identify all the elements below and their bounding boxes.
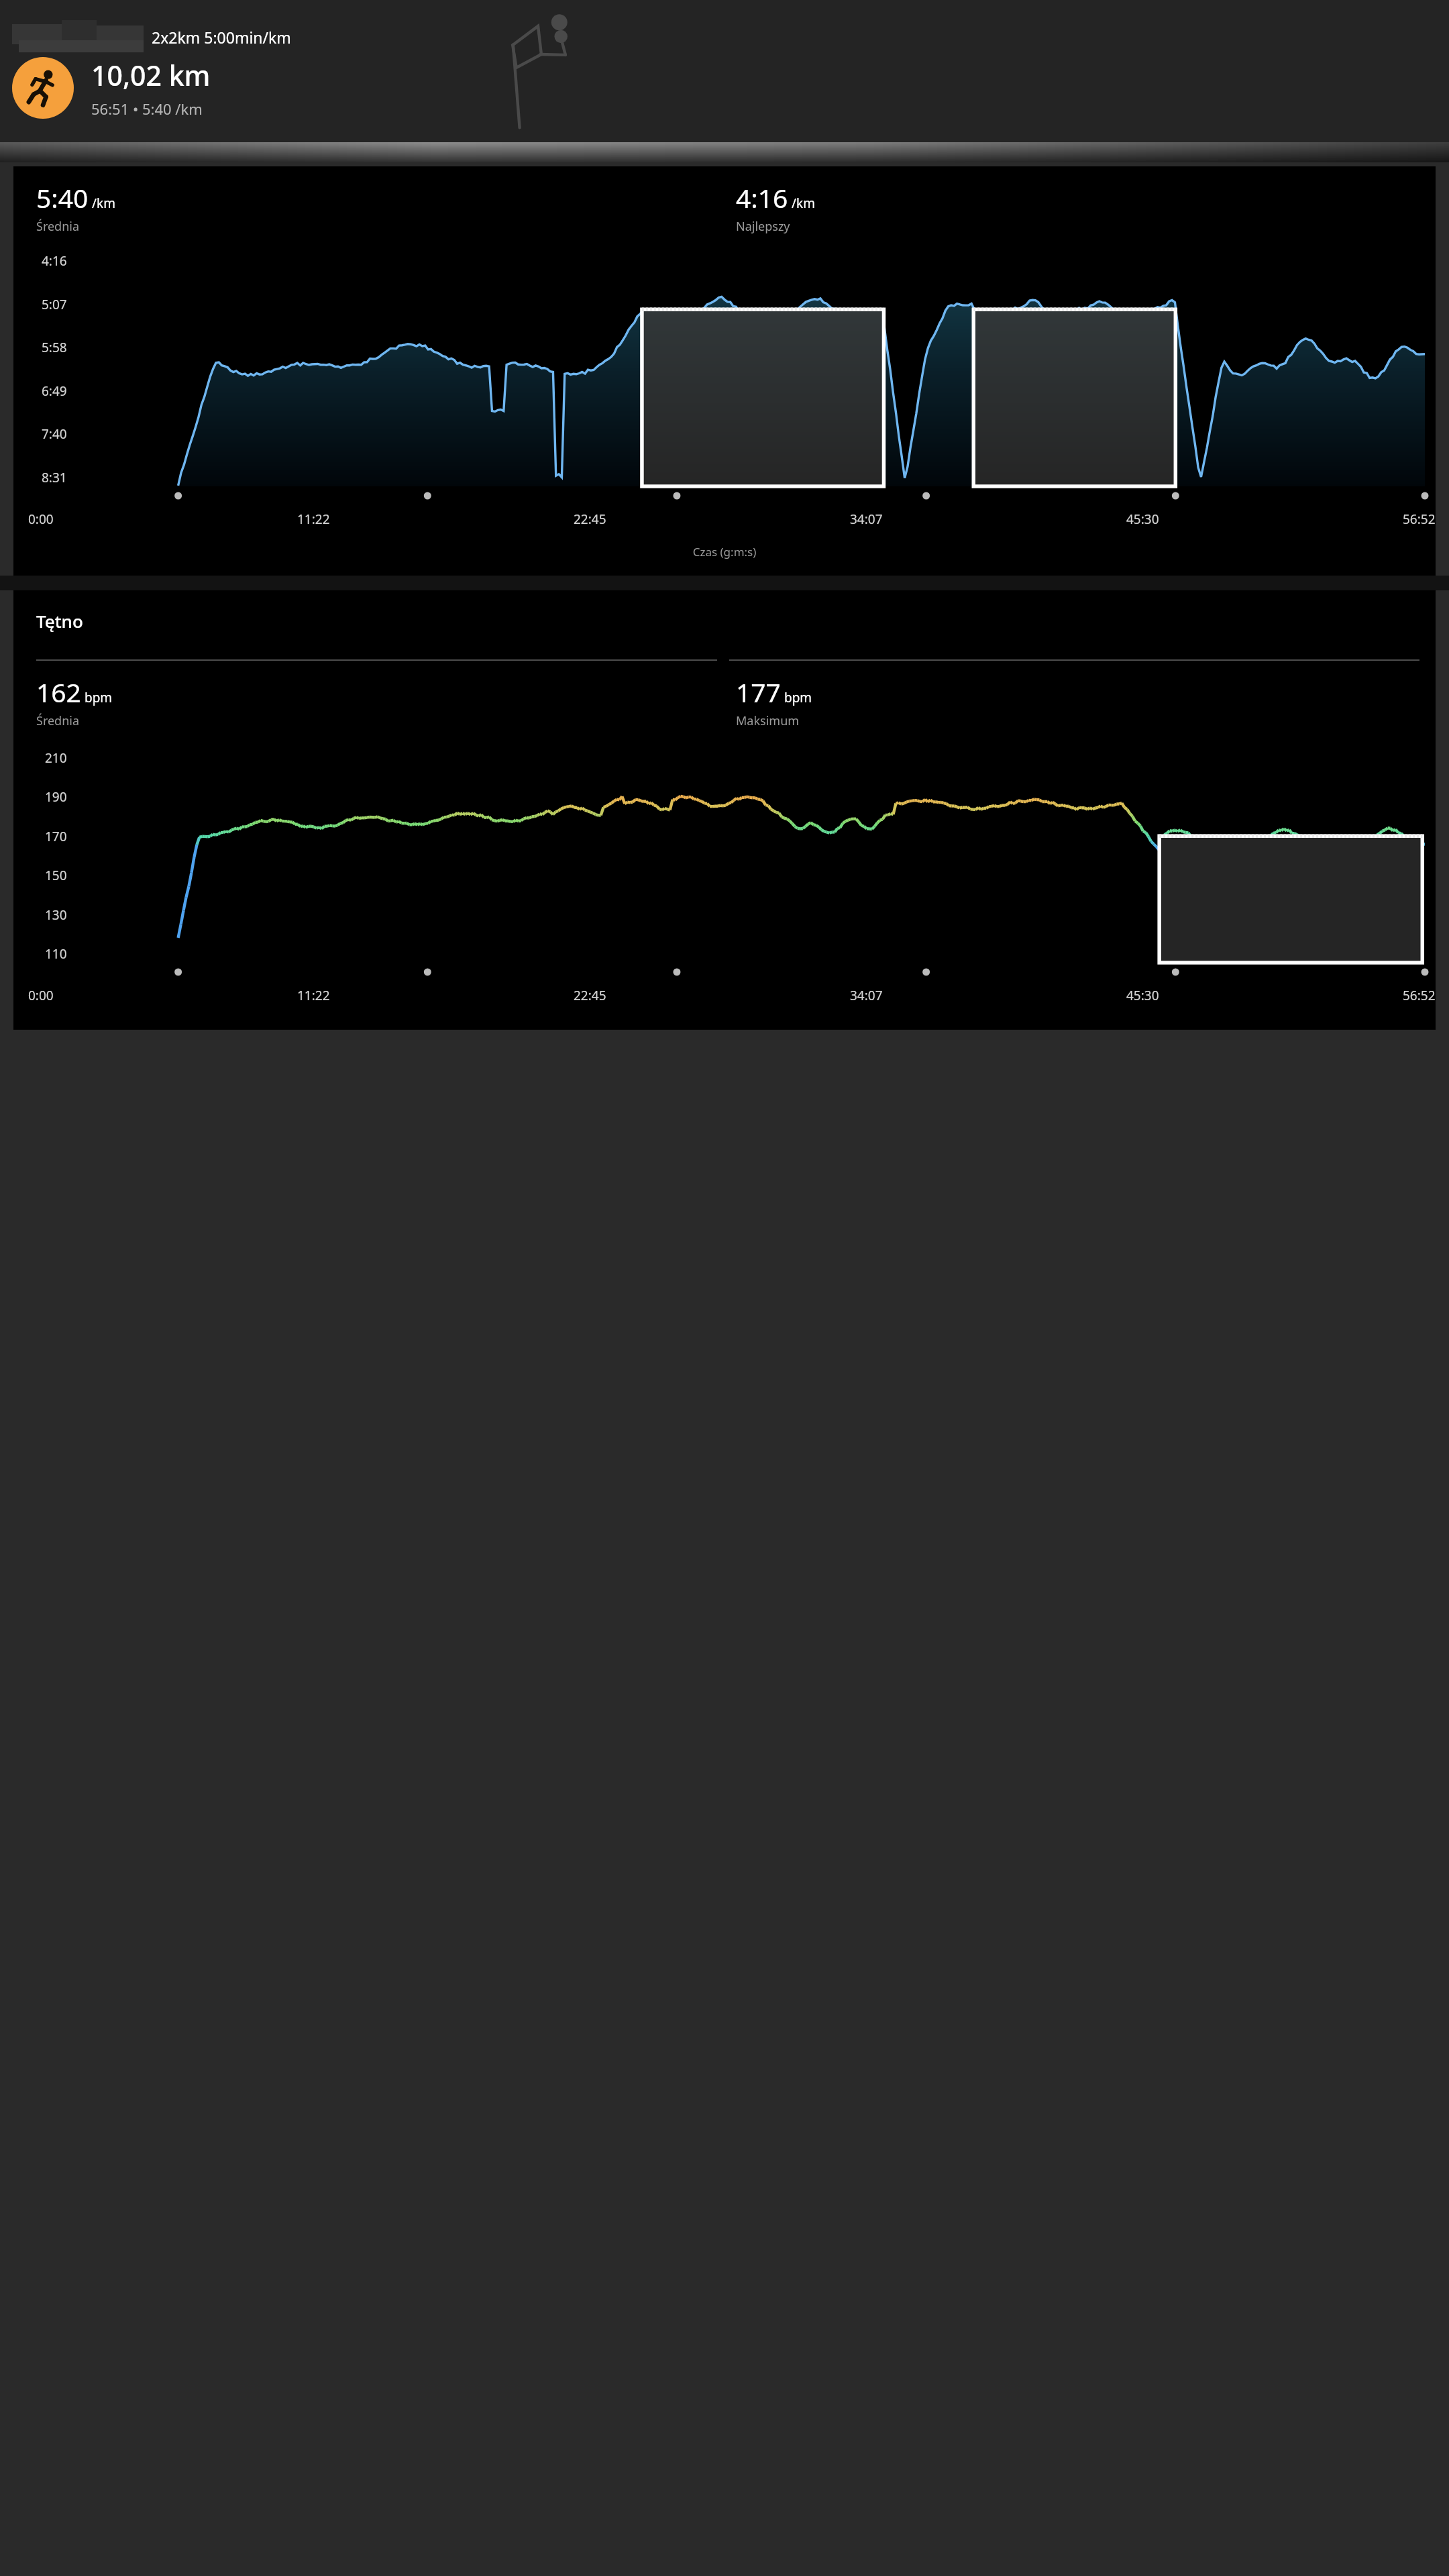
staticText: 11:22 [297,511,330,528]
staticText: 177 [736,674,781,710]
staticText: 170 [45,828,67,845]
staticText: Średnia [36,712,80,729]
staticText: 34:07 [850,511,883,528]
staticText: 45:30 [1126,987,1159,1004]
staticText: /km [792,195,815,212]
staticText: 5:40 [36,180,89,215]
staticText: 0:00 [28,511,54,528]
button[interactable]: 2x2km 5:00min/km [0,0,1449,142]
staticText: 110 [45,945,67,963]
staticText: 10,02 km [91,56,211,94]
staticText: 150 [45,867,67,884]
staticText: 130 [45,906,67,924]
staticText: 45:30 [1126,511,1159,528]
staticText: 7:40 [42,425,67,443]
staticText: bpm [784,689,812,706]
staticText: 190 [45,788,67,806]
staticText: 5:07 [42,296,67,313]
staticText: 6:49 [42,382,67,400]
staticText: 22:45 [574,511,606,528]
staticText: 4:16 [736,180,788,215]
staticText: 2x2km 5:00min/km [152,27,291,48]
staticText: 11:22 [297,987,330,1004]
staticText: Najlepszy [736,218,790,235]
staticText: 22:45 [574,987,606,1004]
staticText: 56:52 [1403,511,1436,528]
staticText: /km [92,195,115,212]
button[interactable]: Tętno [13,590,1436,1030]
staticText: 4:16 [42,252,67,270]
staticText: 56:51 • 5:40 /km [91,99,203,119]
button[interactable]: 5:40 [13,166,1436,576]
staticText: bpm [85,689,113,706]
staticText: Tętno [36,609,83,633]
staticText: 34:07 [850,987,883,1004]
staticText: Czas (g:m:s) [13,544,1436,559]
staticText: 8:31 [42,469,67,486]
staticText: 5:58 [42,339,67,356]
other: Workout goal [495,13,577,129]
staticText: 210 [45,749,67,767]
staticText: Maksimum [736,712,800,729]
staticText: 0:00 [28,987,54,1004]
staticText: 56:52 [1403,987,1436,1004]
staticText: Średnia [36,218,80,235]
staticText: 162 [36,674,81,710]
